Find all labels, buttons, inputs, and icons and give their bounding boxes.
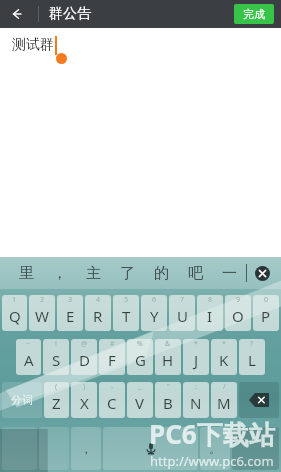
staticText: W: [35, 306, 49, 326]
staticText: 完成: [243, 7, 265, 21]
button[interactable]: _: [127, 382, 153, 418]
button[interactable]: (: [44, 382, 69, 418]
button[interactable]: ，: [71, 427, 101, 470]
staticText: *: [194, 339, 198, 349]
button[interactable]: 0: [253, 295, 279, 331]
staticText: 1: [12, 295, 17, 305]
button[interactable]: 吧: [178, 257, 212, 289]
button[interactable]: :: [183, 382, 209, 418]
staticText: Z: [52, 393, 61, 413]
button[interactable]: %: [127, 339, 153, 375]
staticText: V: [135, 393, 145, 413]
button[interactable]: 8: [197, 295, 223, 331]
button[interactable]: 主: [76, 257, 110, 289]
staticText: 主: [86, 264, 101, 283]
staticText: ~: [26, 339, 31, 349]
button[interactable]: 1: [2, 295, 27, 331]
staticText: O: [232, 306, 244, 326]
button[interactable]: 6: [141, 295, 167, 331]
staticText: http://www.pc6.com: [150, 452, 274, 470]
button[interactable]: *: [183, 339, 209, 375]
button[interactable]: #: [99, 339, 125, 375]
button[interactable]: /: [211, 382, 237, 418]
staticText: H: [162, 350, 174, 370]
staticText: G: [135, 350, 146, 370]
button[interactable]: @: [71, 339, 97, 375]
button[interactable]: 测试群: [0, 28, 281, 257]
staticText: ，: [52, 264, 67, 283]
button[interactable]: Enter: [232, 427, 279, 470]
staticText: Y: [150, 306, 159, 326]
button[interactable]: Back: [0, 0, 38, 28]
button[interactable]: 了: [110, 257, 144, 289]
staticText: ": [167, 382, 170, 392]
staticText: X: [80, 393, 89, 413]
button[interactable]: 一: [212, 257, 246, 289]
staticText: 6: [152, 295, 157, 305]
staticText: 。: [209, 441, 221, 456]
button[interactable]: 9: [225, 295, 251, 331]
staticText: /: [223, 382, 226, 392]
staticText: T: [122, 306, 131, 326]
button[interactable]: *: [211, 339, 237, 375]
staticText: 一: [222, 264, 237, 283]
button[interactable]: Close candidates: [247, 257, 277, 289]
button[interactable]: 5: [113, 295, 139, 331]
button[interactable]: Language: [39, 427, 69, 470]
staticText: F: [108, 350, 116, 370]
staticText: E: [66, 306, 75, 326]
button[interactable]: ": [155, 382, 181, 418]
staticText: #: [110, 339, 115, 349]
button[interactable]: 里: [10, 257, 43, 289]
button[interactable]: Symbols: [2, 427, 37, 470]
button[interactable]: 完成: [234, 4, 274, 24]
staticText: M: [217, 393, 231, 413]
staticText: K: [219, 350, 229, 370]
staticText: 里: [19, 264, 34, 283]
staticText: B: [163, 393, 173, 413]
staticText: :: [195, 382, 197, 392]
staticText: 吧: [188, 264, 203, 283]
staticText: I: [207, 306, 213, 326]
staticText: P: [261, 306, 271, 326]
staticText: J: [194, 350, 199, 370]
button[interactable]: 。: [200, 427, 230, 470]
button[interactable]: !: [43, 339, 69, 375]
staticText: ): [83, 382, 86, 392]
staticText: 分词: [11, 393, 33, 407]
staticText: 测试群: [12, 36, 54, 54]
staticText: 7: [180, 295, 185, 305]
staticText: PC6下载站: [149, 416, 275, 452]
button[interactable]: Space: [103, 427, 198, 470]
staticText: 2: [40, 295, 45, 305]
button[interactable]: 的: [144, 257, 178, 289]
button[interactable]: 4: [85, 295, 111, 331]
staticText: 5: [124, 295, 129, 305]
button[interactable]: 3: [57, 295, 83, 331]
staticText: ?: [250, 339, 254, 349]
staticText: 的: [154, 264, 169, 283]
staticText: !: [55, 339, 57, 349]
button[interactable]: 分词: [2, 382, 42, 418]
staticText: R: [93, 306, 103, 326]
button[interactable]: 7: [169, 295, 195, 331]
staticText: _: [138, 382, 142, 392]
button[interactable]: ，: [43, 257, 76, 289]
button[interactable]: ?: [239, 339, 265, 375]
staticText: Q: [9, 306, 21, 326]
staticText: &: [165, 339, 171, 349]
staticText: 8: [208, 295, 213, 305]
button[interactable]: &: [155, 339, 181, 375]
staticText: 4: [96, 295, 101, 305]
button[interactable]: -: [99, 382, 125, 418]
button[interactable]: ): [71, 382, 97, 418]
staticText: L: [248, 350, 256, 370]
staticText: 群公告: [49, 5, 91, 23]
staticText: 3: [68, 295, 73, 305]
staticText: -: [111, 382, 114, 392]
button[interactable]: ~: [16, 339, 41, 375]
button[interactable]: 2: [29, 295, 55, 331]
staticText: %: [137, 339, 143, 349]
button[interactable]: Backspace: [239, 382, 279, 418]
staticText: U: [177, 306, 188, 326]
